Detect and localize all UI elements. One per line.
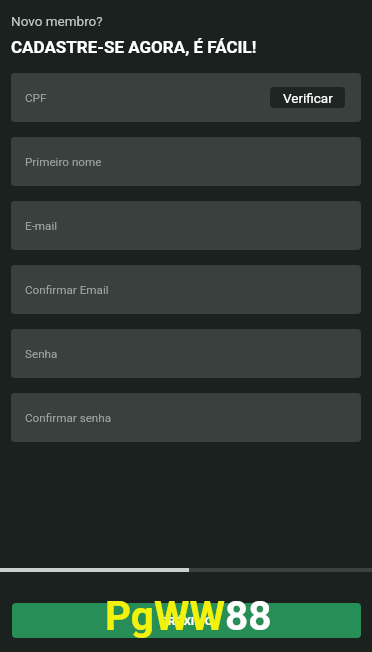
staticText: CPF [25,91,47,105]
button[interactable]: Primeiro nome [11,137,361,186]
button[interactable]: Confirmar senha [11,393,361,442]
staticText: PgWW [105,592,225,639]
staticText: Confirmar senha [25,411,112,425]
staticText: E-mail [25,219,58,233]
button[interactable]: PRÓXIMO [12,603,361,638]
button[interactable]: CPF [11,73,361,122]
other: Progresso do cadastro [0,568,372,572]
button[interactable]: Senha [11,329,361,378]
staticText: Primeiro nome [25,155,102,169]
staticText: Novo membro? [11,13,103,29]
staticText: PRÓXIMO [160,614,213,628]
staticText: Confirmar Email [25,283,109,297]
staticText: CADASTRE-SE AGORA, É FÁCIL! [11,37,257,57]
staticText: Verificar [283,90,333,106]
staticText: Senha [25,347,58,361]
button[interactable]: E-mail [11,201,361,250]
button[interactable]: Verificar [270,87,345,108]
staticText: 88 [225,592,272,639]
button[interactable]: Confirmar Email [11,265,361,314]
